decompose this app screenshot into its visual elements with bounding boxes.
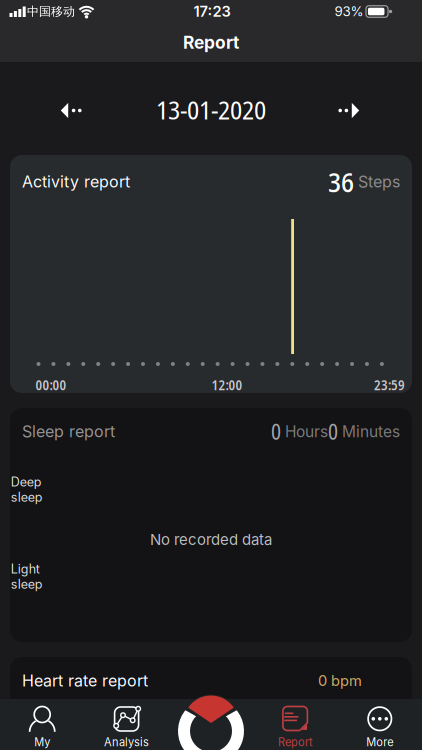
staticText: Hours <box>281 422 328 441</box>
staticText: Deep sleep <box>11 474 43 505</box>
staticText: Report <box>183 32 239 53</box>
staticText: 12:00 <box>211 376 242 394</box>
staticText: 23:59 <box>374 376 405 394</box>
staticText: 00:00 <box>35 376 66 394</box>
button[interactable] <box>336 100 362 120</box>
staticText: Report <box>278 736 313 749</box>
staticText: 13-01-2020 <box>156 92 266 127</box>
button[interactable]: Report <box>253 699 338 750</box>
button[interactable] <box>169 699 253 750</box>
staticText: 17:23 <box>193 3 230 20</box>
staticText: 36 <box>328 163 354 200</box>
button[interactable]: My <box>0 699 84 750</box>
staticText: 0 bpm <box>318 672 362 689</box>
staticText: 中国移动 <box>27 4 75 19</box>
staticText: 0 <box>271 417 281 446</box>
button[interactable]: Analysis <box>84 699 169 750</box>
staticText: Light sleep <box>11 561 43 592</box>
button[interactable]: More <box>338 699 422 750</box>
staticText: Activity report <box>22 172 130 191</box>
staticText: My <box>34 736 50 749</box>
staticText: Steps <box>358 172 400 191</box>
staticText: No recorded data <box>150 530 272 549</box>
staticText: 93% <box>334 3 363 19</box>
staticText: Heart rate report <box>22 671 148 690</box>
staticText: More <box>366 736 393 749</box>
staticText: Minutes <box>338 422 400 441</box>
button[interactable] <box>58 100 84 120</box>
staticText: Sleep report <box>22 422 115 441</box>
staticText: Analysis <box>104 736 149 749</box>
staticText: 0 <box>328 417 338 446</box>
